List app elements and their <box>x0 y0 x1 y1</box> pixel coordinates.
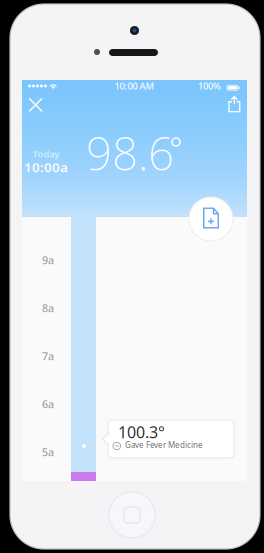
button[interactable]: Share <box>220 90 247 118</box>
staticText: 10:00a <box>24 158 68 176</box>
button[interactable]: Close <box>22 91 49 119</box>
staticText: 6a <box>42 397 54 411</box>
staticText: 100.3° <box>118 421 165 443</box>
staticText: 9a <box>42 253 54 267</box>
staticText: 7a <box>42 349 54 363</box>
staticText: 5a <box>42 445 54 459</box>
button[interactable]: Add entry <box>189 195 234 243</box>
staticText: 98.6 <box>86 123 174 183</box>
staticText: 100% <box>198 80 221 92</box>
staticText: Today <box>32 148 59 160</box>
staticText: 10:00 AM <box>114 80 154 92</box>
staticText: Gave Fever Medicine <box>125 440 203 450</box>
staticText: 8a <box>42 301 54 315</box>
